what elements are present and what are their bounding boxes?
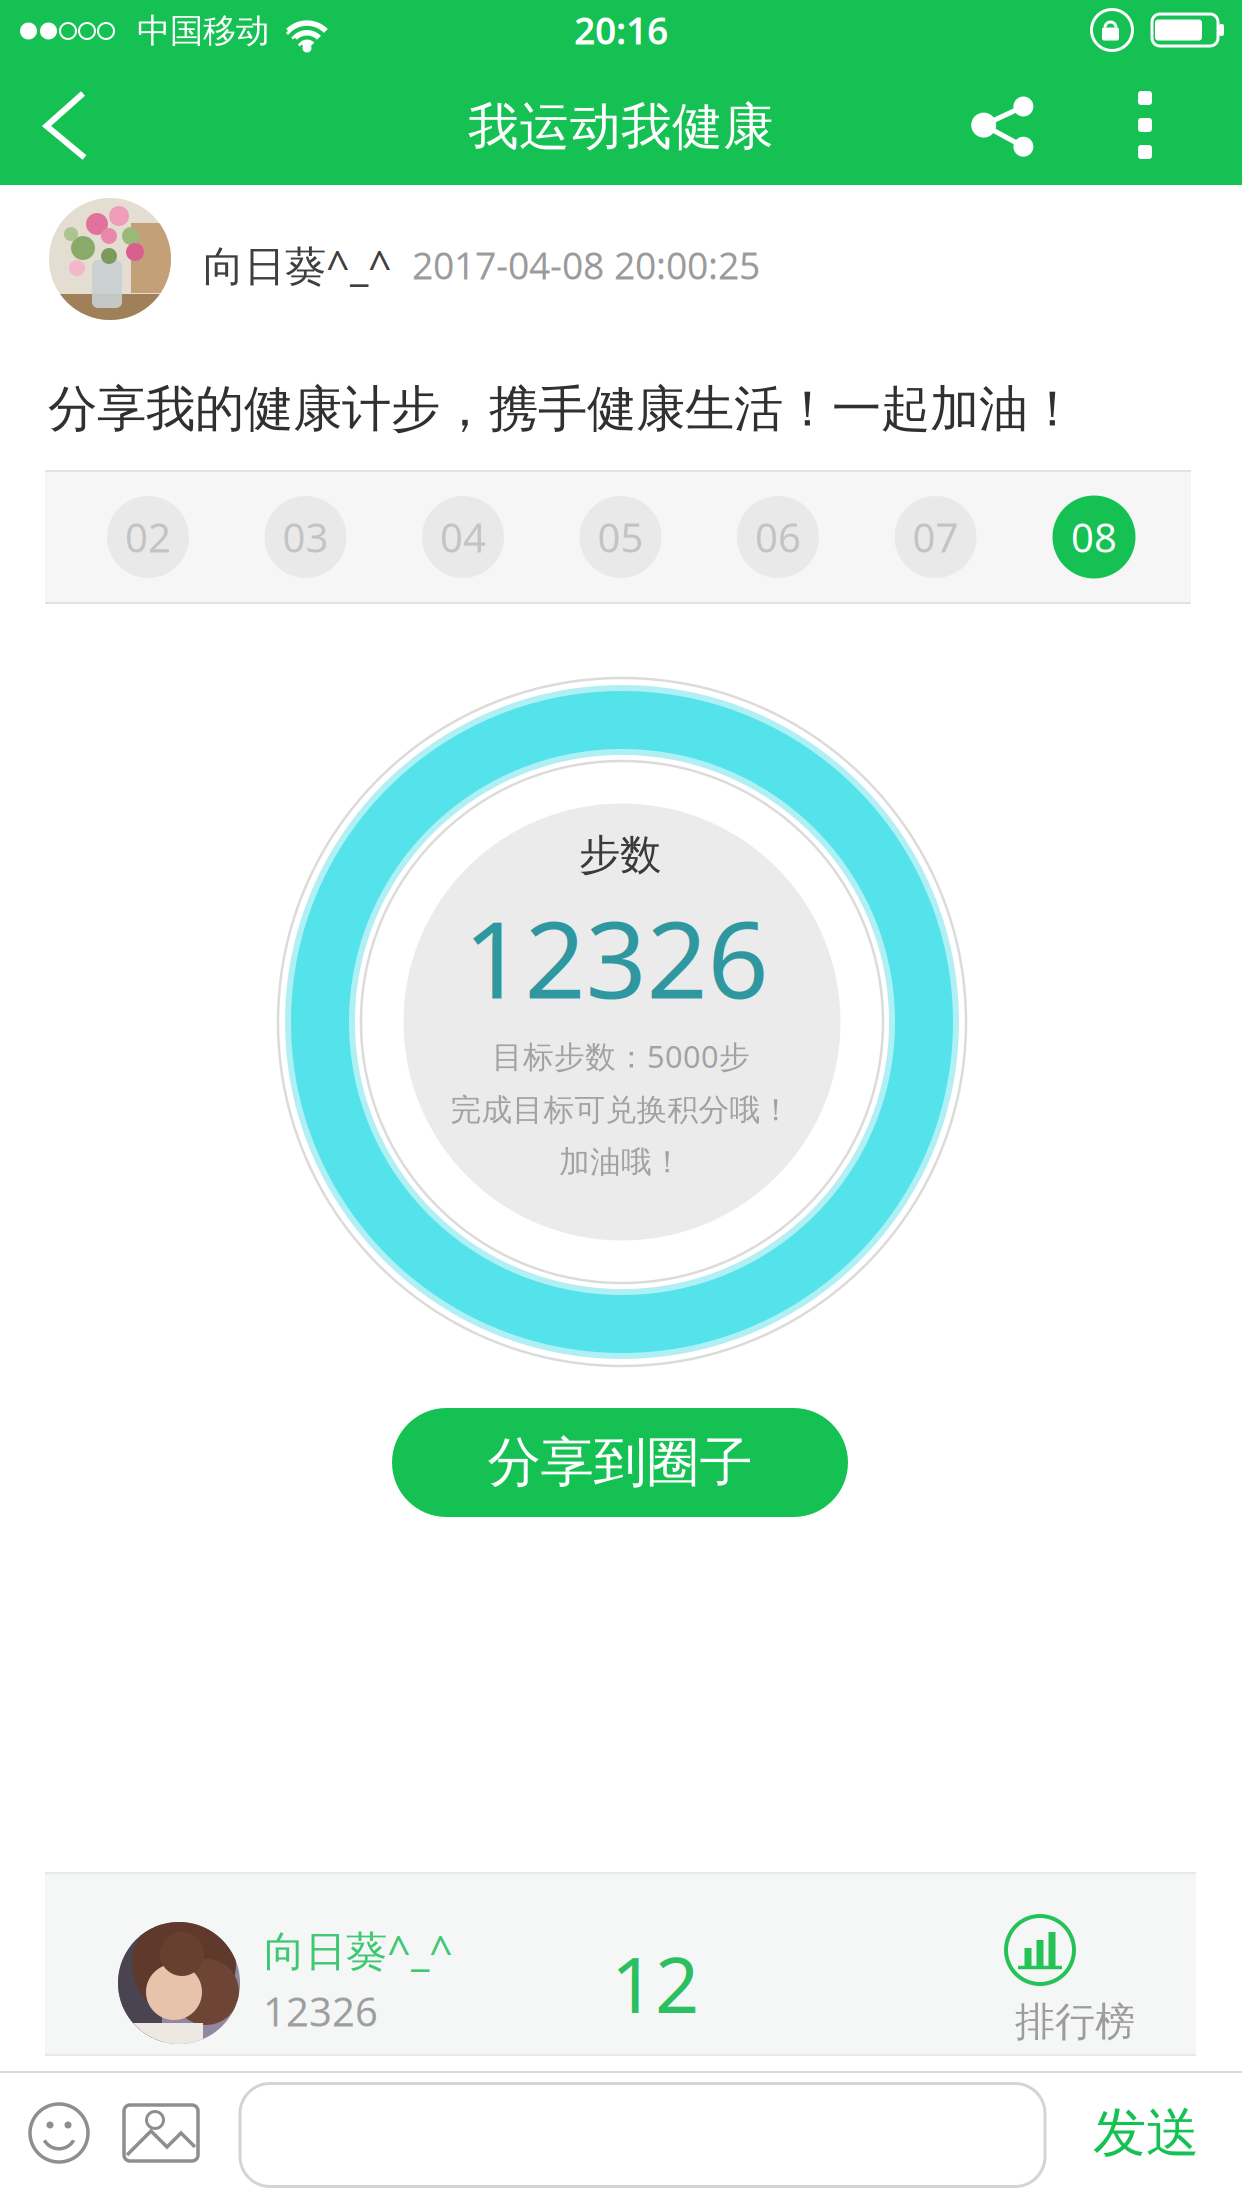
- staticText: 12326: [263, 1984, 378, 2037]
- button[interactable]: 排行榜: [1005, 1915, 1145, 2045]
- staticText: 08: [1071, 510, 1117, 563]
- staticText: 20:16: [574, 5, 668, 55]
- button[interactable]: 06: [737, 496, 819, 578]
- button[interactable]: [45, 91, 89, 159]
- staticText: 分享我的健康计步，携手健康生活！一起加油！: [48, 379, 1077, 439]
- button[interactable]: 05: [579, 496, 661, 578]
- staticText: 加油哦！: [559, 1143, 683, 1181]
- staticText: 05: [597, 510, 643, 563]
- staticText: 向日葵^_^: [264, 1923, 453, 1977]
- button[interactable]: [1133, 91, 1157, 159]
- button[interactable]: [970, 95, 1032, 157]
- staticText: 07: [912, 510, 958, 563]
- staticText: 12326: [463, 886, 768, 1028]
- button[interactable]: 04: [422, 496, 504, 578]
- button[interactable]: 分享到圈子: [392, 1408, 848, 1517]
- staticText: 04: [440, 510, 486, 563]
- button[interactable]: 发送: [1093, 2100, 1199, 2166]
- staticText: 分享到圈子: [487, 1430, 752, 1495]
- staticText: 中国移动: [137, 10, 269, 51]
- staticText: 我运动我健康: [468, 96, 774, 158]
- button[interactable]: [122, 2103, 200, 2163]
- staticText: 02: [125, 510, 171, 563]
- staticText: 目标步数：5000步: [492, 1036, 750, 1076]
- staticText: 发送: [1093, 2100, 1199, 2166]
- staticText: 06: [755, 510, 801, 563]
- staticText: 步数: [579, 830, 661, 880]
- staticText: 03: [282, 510, 328, 563]
- staticText: 排行榜: [1015, 1997, 1135, 2046]
- button[interactable]: 02: [107, 496, 189, 578]
- button[interactable]: 03: [264, 496, 346, 578]
- button[interactable]: [240, 2083, 1045, 2186]
- button[interactable]: 07: [894, 496, 976, 578]
- button[interactable]: 08: [1052, 495, 1135, 578]
- button[interactable]: [28, 2102, 90, 2164]
- staticText: 12: [611, 1932, 699, 2034]
- staticText: 2017-04-08 20:00:25: [412, 240, 760, 290]
- staticText: 向日葵^_^: [203, 238, 392, 292]
- staticText: 完成目标可兑换积分哦！: [450, 1091, 791, 1129]
